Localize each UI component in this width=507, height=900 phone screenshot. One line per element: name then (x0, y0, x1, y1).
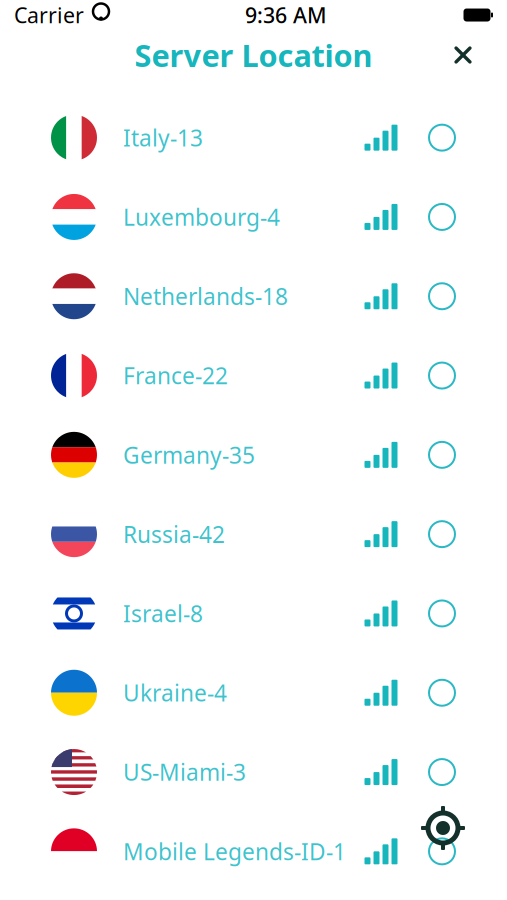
staticText: Israel-8 (123, 598, 203, 628)
button[interactable]: Netherlands-18 (0, 257, 507, 336)
button[interactable]: Ukraine-4 (0, 653, 507, 732)
staticText: Mobile Legends-ID-1 (123, 836, 346, 866)
staticText: France-22 (123, 360, 228, 391)
staticText: Russia-42 (123, 519, 225, 549)
staticText: Server Location (134, 35, 372, 75)
staticText: Ukraine-4 (123, 678, 227, 708)
button[interactable]: Russia-42 (0, 494, 507, 574)
staticText: Germany-35 (123, 440, 255, 470)
button[interactable]: Mobile Legends-ID-1 (0, 812, 507, 891)
button[interactable]: Israel-8 (0, 574, 507, 653)
button[interactable]: US-Miami-3 (0, 732, 507, 812)
staticText: US-Miami-3 (123, 757, 246, 787)
staticText: Carrier (14, 1, 84, 29)
button[interactable]: Close (441, 33, 485, 77)
button[interactable]: Germany-35 (0, 415, 507, 494)
staticText: Luxembourg-4 (123, 202, 280, 232)
staticText: Netherlands-18 (123, 281, 288, 311)
button[interactable]: Luxembourg-4 (0, 177, 507, 257)
staticText: 9:36 AM (245, 1, 327, 29)
button[interactable]: France-22 (0, 336, 507, 415)
button[interactable]: Italy-13 (0, 98, 507, 177)
staticText: Italy-13 (123, 123, 203, 153)
